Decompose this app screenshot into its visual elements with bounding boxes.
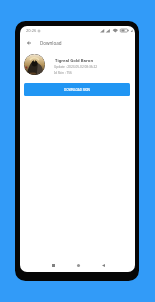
button[interactable]: Home bbox=[73, 260, 83, 270]
staticText: Id Skin : 756 bbox=[54, 71, 72, 75]
staticText: DOWNLOAD SKIN bbox=[64, 88, 90, 92]
button[interactable]: Back bbox=[23, 37, 34, 48]
staticText: Update : 2023-05-02 08:36:22 bbox=[54, 65, 97, 69]
staticText: Tigreal Gold Baron bbox=[55, 58, 94, 64]
staticText: 20:26 bbox=[26, 28, 37, 33]
button[interactable]: DOWNLOAD SKIN bbox=[24, 83, 130, 96]
button[interactable]: Back bbox=[98, 260, 108, 270]
button[interactable]: Recents bbox=[48, 260, 58, 270]
staticText: Download bbox=[40, 40, 62, 46]
button[interactable]: Tigreal Gold Baron bbox=[20, 52, 135, 78]
